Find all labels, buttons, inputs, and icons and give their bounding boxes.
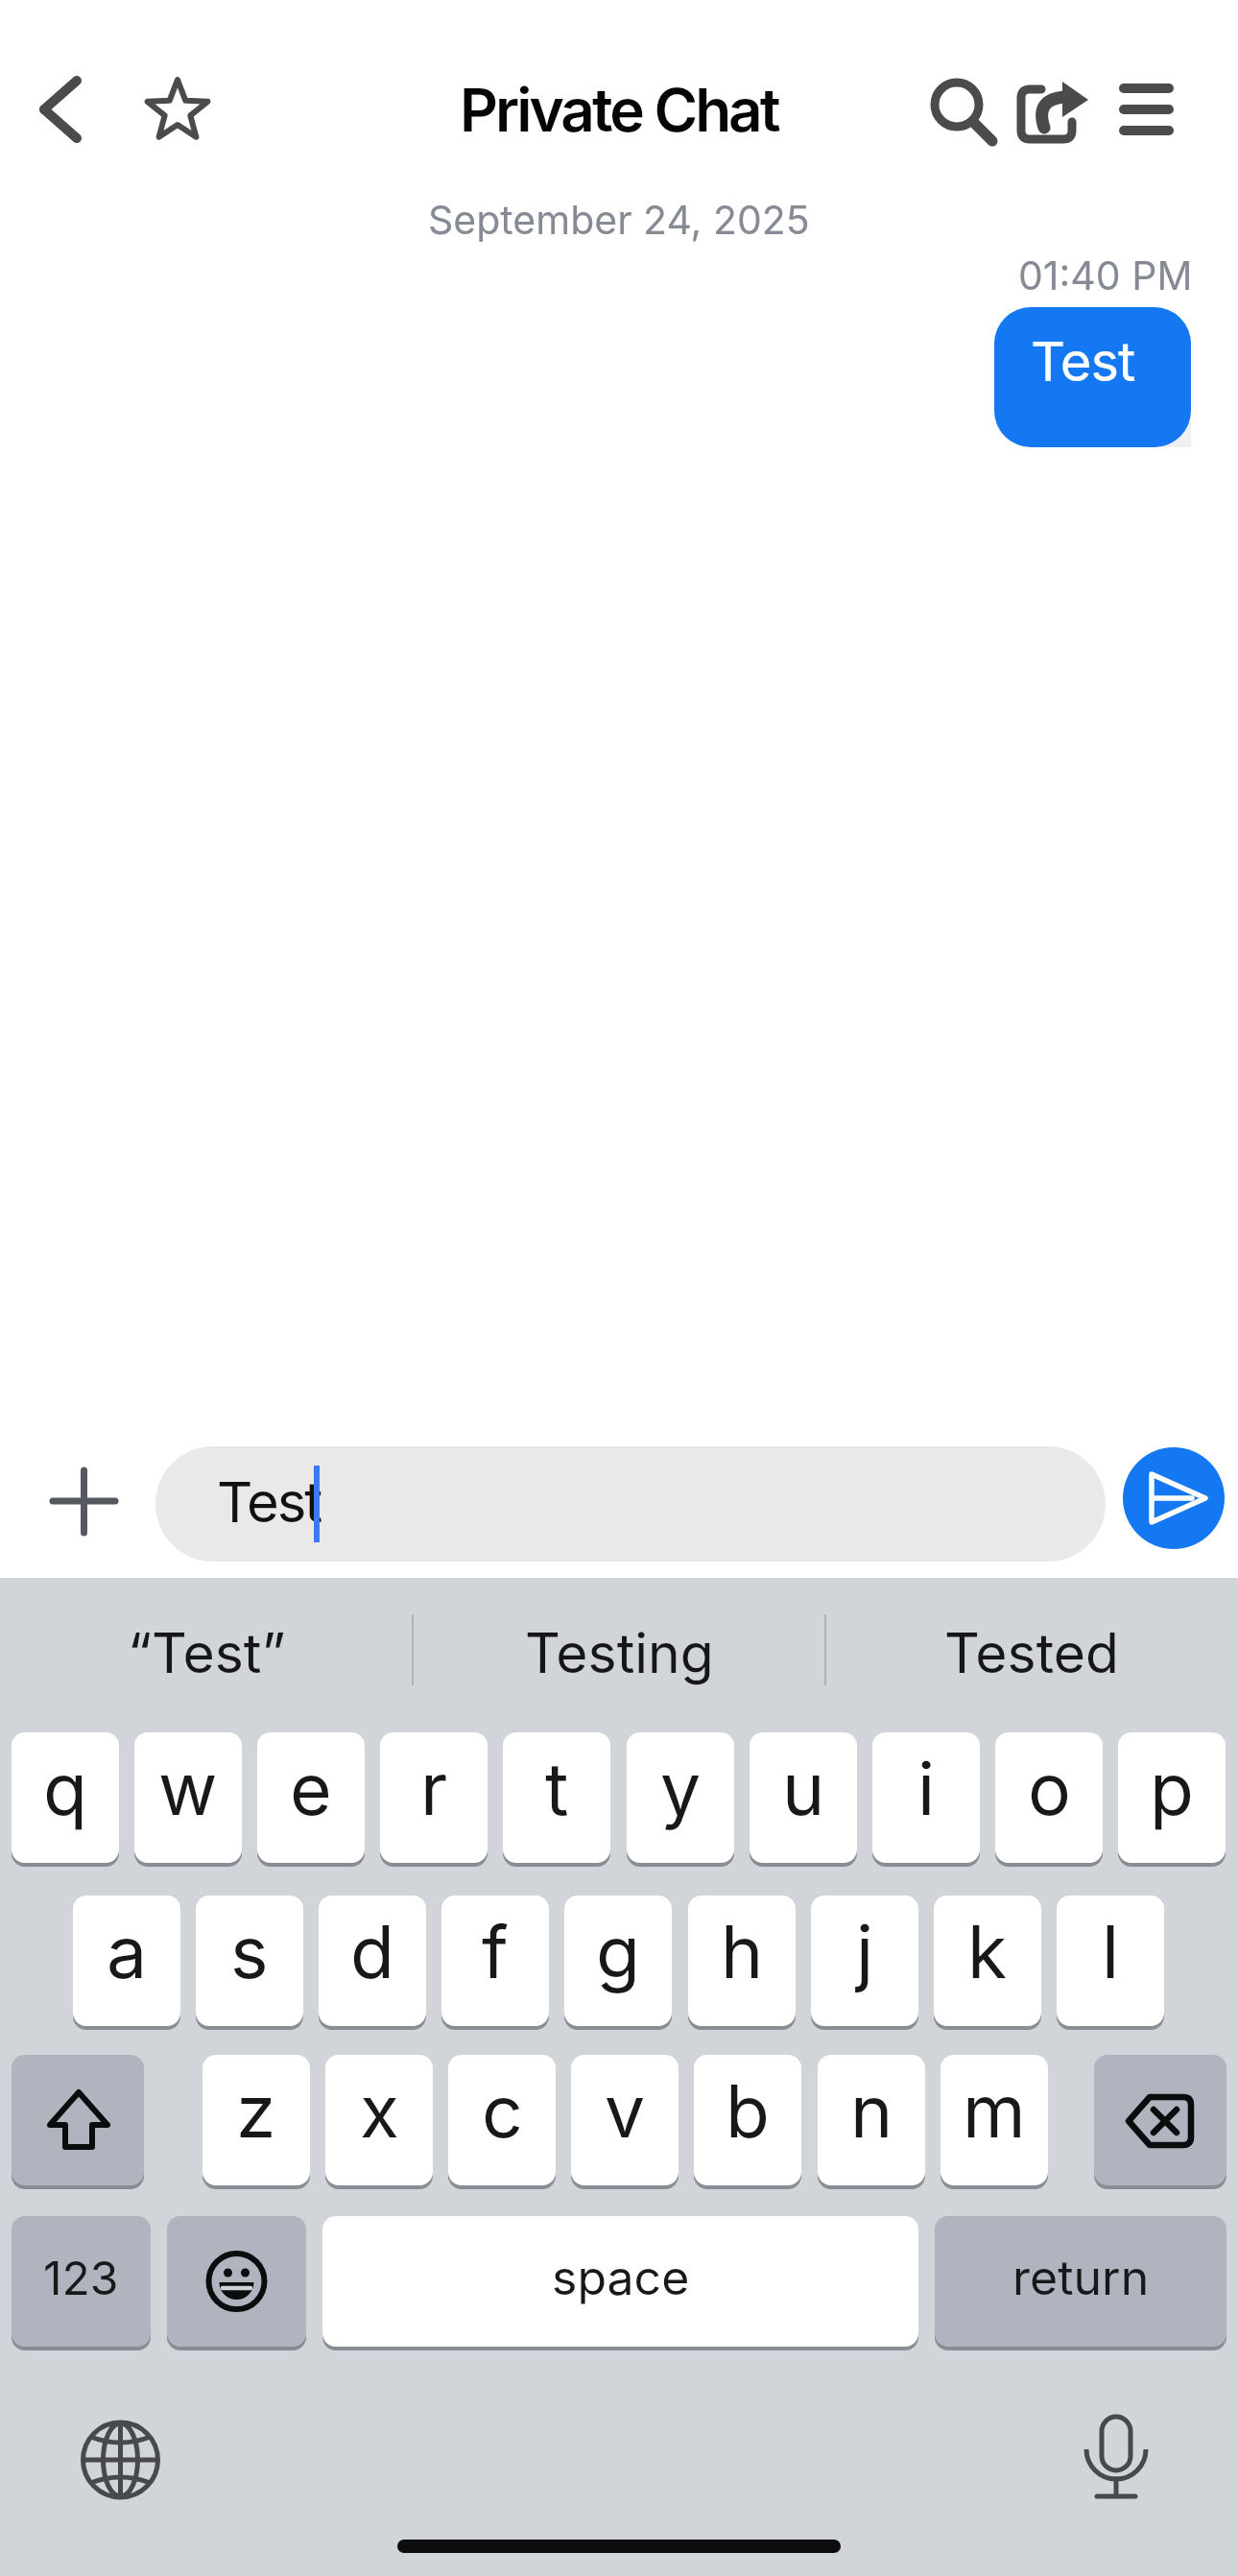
button[interactable]: p — [1118, 1732, 1226, 1867]
staticText: Private Chat — [460, 74, 778, 146]
button[interactable]: l — [1057, 1896, 1164, 2030]
button[interactable] — [12, 2055, 144, 2189]
button[interactable]: b — [694, 2055, 801, 2189]
staticText: 01:40 PM — [1018, 251, 1193, 299]
button[interactable]: y — [627, 1732, 734, 1867]
button[interactable]: 123 — [12, 2216, 151, 2350]
staticText: n — [850, 2067, 893, 2155]
staticText: i — [917, 1745, 936, 1832]
button[interactable]: Test — [994, 307, 1191, 447]
button[interactable]: “Test” — [10, 1608, 403, 1698]
button[interactable] — [38, 1456, 130, 1547]
button[interactable]: c — [448, 2055, 556, 2189]
staticText: 123 — [43, 2250, 119, 2305]
staticText: l — [1102, 1908, 1120, 1995]
staticText: f — [482, 1908, 509, 1995]
staticText: September 24, 2025 — [428, 196, 810, 244]
staticText: Test — [1031, 329, 1135, 394]
button[interactable]: i — [872, 1732, 980, 1867]
staticText: y — [660, 1745, 702, 1832]
button[interactable]: w — [134, 1732, 242, 1867]
staticText: t — [545, 1745, 569, 1832]
button[interactable]: d — [319, 1896, 426, 2030]
button[interactable]: return — [935, 2216, 1226, 2350]
staticText: p — [1150, 1745, 1194, 1832]
button[interactable]: z — [202, 2055, 310, 2189]
staticText: w — [158, 1745, 218, 1832]
staticText: Tested — [944, 1620, 1119, 1686]
button[interactable] — [27, 67, 96, 152]
button[interactable]: v — [571, 2055, 679, 2189]
button[interactable] — [1123, 1447, 1225, 1549]
staticText: a — [107, 1908, 148, 1995]
button[interactable]: h — [688, 1896, 796, 2030]
button[interactable]: k — [934, 1896, 1041, 2030]
staticText: q — [43, 1745, 87, 1832]
staticText: o — [1028, 1745, 1071, 1832]
staticText: z — [236, 2067, 276, 2155]
staticText: b — [726, 2067, 770, 2155]
button[interactable]: space — [322, 2216, 918, 2350]
staticText: x — [360, 2067, 399, 2155]
staticText: m — [963, 2067, 1026, 2155]
button[interactable] — [75, 2415, 166, 2506]
staticText: h — [721, 1908, 764, 1995]
button[interactable] — [1070, 2409, 1161, 2500]
button[interactable] — [167, 2216, 306, 2350]
staticText: j — [856, 1908, 874, 1995]
staticText: k — [967, 1908, 1008, 1995]
button[interactable] — [1113, 77, 1180, 140]
button[interactable]: m — [940, 2055, 1048, 2189]
button[interactable] — [1015, 73, 1092, 146]
button[interactable]: t — [503, 1732, 610, 1867]
staticText: d — [350, 1908, 394, 1995]
staticText: s — [230, 1908, 269, 1995]
button[interactable] — [1094, 2055, 1226, 2189]
button[interactable] — [142, 69, 213, 150]
button[interactable]: a — [73, 1896, 180, 2030]
button[interactable]: s — [196, 1896, 303, 2030]
staticText: Testing — [525, 1620, 714, 1686]
button[interactable]: j — [811, 1896, 918, 2030]
staticText: space — [552, 2249, 690, 2306]
staticText: g — [596, 1908, 640, 1995]
staticText: u — [782, 1745, 825, 1832]
button[interactable]: x — [325, 2055, 433, 2189]
button[interactable]: e — [257, 1732, 365, 1867]
staticText: v — [605, 2067, 646, 2155]
staticText: Test — [217, 1468, 321, 1536]
staticText: e — [290, 1745, 332, 1832]
button[interactable]: u — [750, 1732, 857, 1867]
staticText: r — [420, 1745, 448, 1832]
button[interactable]: g — [564, 1896, 672, 2030]
button[interactable]: n — [818, 2055, 925, 2189]
button[interactable] — [927, 73, 996, 146]
staticText: return — [1012, 2249, 1150, 2306]
staticText: “Test” — [128, 1620, 286, 1686]
button[interactable]: Tested — [835, 1608, 1228, 1698]
button[interactable]: Testing — [422, 1608, 816, 1698]
button[interactable]: r — [380, 1732, 488, 1867]
button[interactable]: Test — [155, 1446, 1106, 1562]
button[interactable]: o — [995, 1732, 1103, 1867]
button[interactable]: q — [12, 1732, 119, 1867]
staticText: c — [482, 2067, 523, 2155]
button[interactable]: f — [441, 1896, 549, 2030]
